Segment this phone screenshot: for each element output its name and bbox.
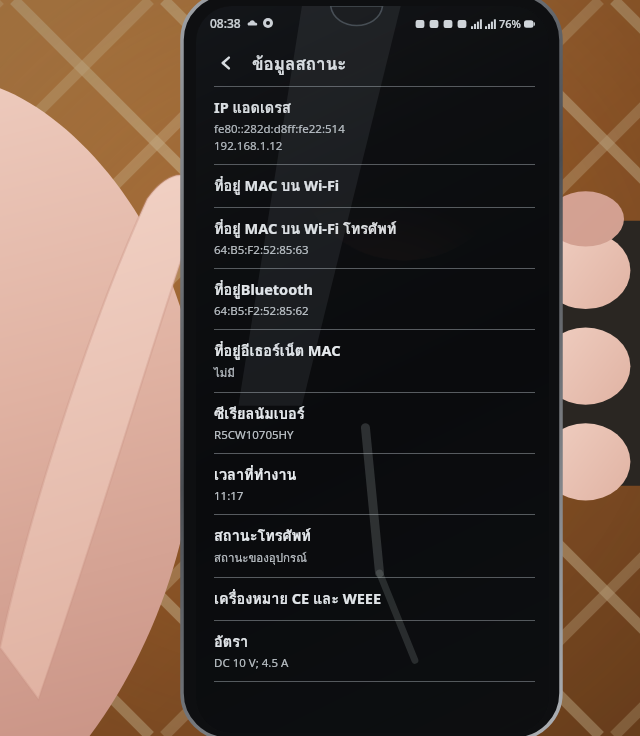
button[interactable]: Back bbox=[206, 43, 246, 83]
staticText: DC 10 V; 4.5 A bbox=[214, 655, 289, 671]
button[interactable]: สถานะโทรศัพท์ bbox=[196, 515, 549, 577]
staticText: ไม่มี bbox=[214, 364, 235, 382]
button[interactable]: เครื่องหมาย CE และ WEEE bbox=[196, 578, 549, 620]
staticText: 11:17 bbox=[214, 488, 244, 504]
button[interactable]: IP แอดเดรส bbox=[196, 87, 549, 164]
staticText: 64:B5:F2:52:85:63 bbox=[214, 242, 309, 258]
button[interactable]: เวลาที่ทำงาน bbox=[196, 454, 549, 514]
staticText: อัตรา bbox=[214, 630, 249, 653]
staticText: 08:38 bbox=[210, 15, 241, 31]
button[interactable]: ที่อยู่ MAC บน Wi-Fi bbox=[196, 165, 549, 207]
staticText: สถานะของอุปกรณ์ bbox=[214, 549, 307, 567]
staticText: ซีเรียลนัมเบอร์ bbox=[214, 402, 305, 425]
button[interactable]: ที่อยู่อีเธอร์เน็ต MAC bbox=[196, 330, 549, 392]
button[interactable]: ที่อยู่ MAC บน Wi-Fi โทรศัพท์ bbox=[196, 208, 549, 268]
staticText: ที่อยู่Bluetooth bbox=[214, 278, 313, 301]
button[interactable]: ที่อยู่Bluetooth bbox=[196, 269, 549, 329]
staticText: เวลาที่ทำงาน bbox=[214, 463, 297, 486]
button[interactable]: ซีเรียลนัมเบอร์ bbox=[196, 393, 549, 453]
staticText: เครื่องหมาย CE และ WEEE bbox=[214, 587, 382, 610]
staticText: 192.168.1.12 bbox=[214, 138, 283, 154]
staticText: 76% bbox=[499, 16, 521, 31]
staticText: fe80::282d:d8ff:fe22:514 bbox=[214, 121, 345, 137]
button[interactable]: อัตรา bbox=[196, 621, 549, 681]
staticText: ที่อยู่ MAC บน Wi-Fi bbox=[214, 174, 340, 197]
staticText: IP แอดเดรส bbox=[214, 96, 291, 119]
staticText: ที่อยู่ MAC บน Wi-Fi โทรศัพท์ bbox=[214, 217, 397, 240]
staticText: สถานะโทรศัพท์ bbox=[214, 524, 311, 547]
staticText: 64:B5:F2:52:85:62 bbox=[214, 303, 309, 319]
staticText: R5CW10705HY bbox=[214, 427, 294, 443]
staticText: ที่อยู่อีเธอร์เน็ต MAC bbox=[214, 339, 341, 362]
staticText: ข้อมูลสถานะ bbox=[252, 50, 347, 77]
